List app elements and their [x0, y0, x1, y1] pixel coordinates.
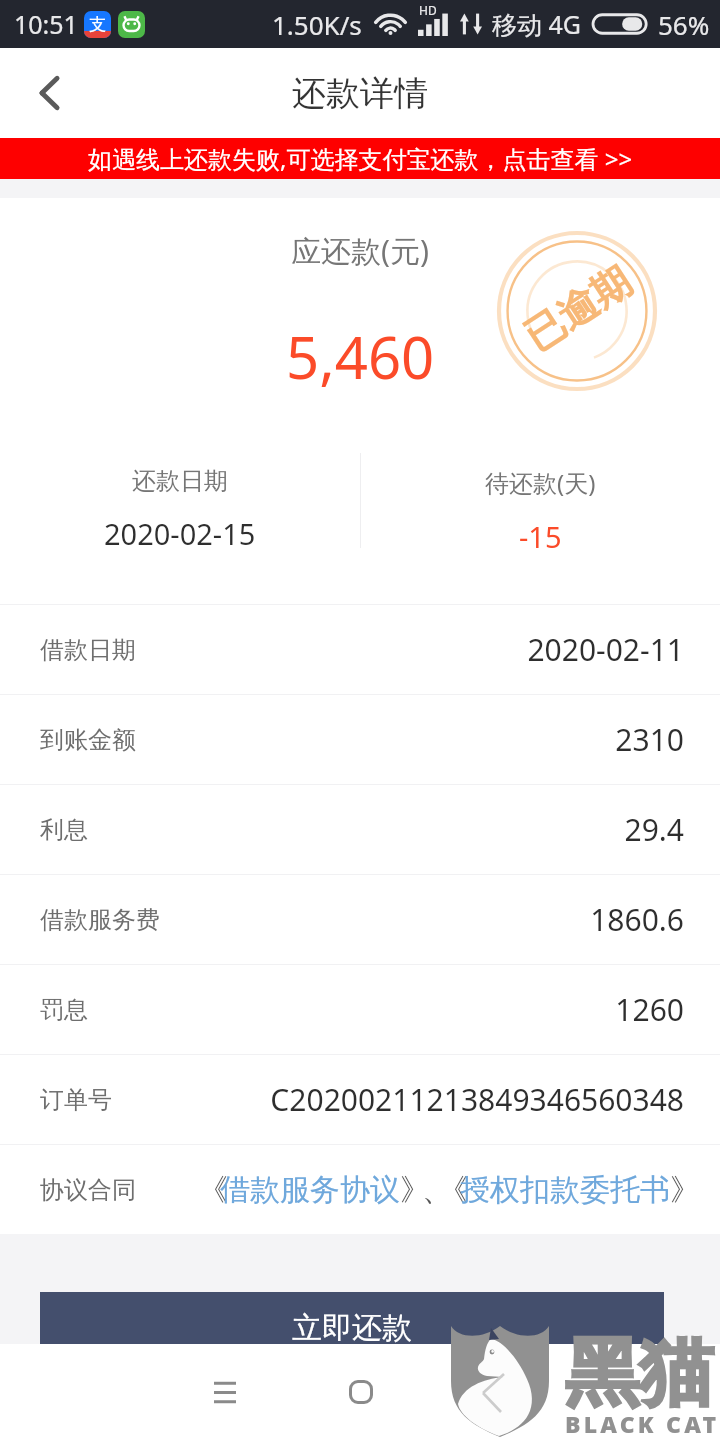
- staticText: BLACK CAT: [565, 1408, 720, 1439]
- staticText: 10:51: [14, 7, 78, 41]
- staticText: 56%: [658, 7, 710, 42]
- button[interactable]: 如遇线上还款失败,可选择支付宝还款，点击查看 >>: [0, 138, 720, 179]
- staticText: 借款日期: [40, 635, 136, 665]
- staticText: 2020-02-15: [104, 514, 256, 553]
- staticText: 支: [89, 14, 106, 35]
- button[interactable]: 借款服务费: [0, 875, 720, 964]
- button[interactable]: Back: [0, 48, 96, 138]
- staticText: 1860.6: [590, 899, 684, 940]
- button[interactable]: Recent apps: [191, 1358, 259, 1426]
- button[interactable]: 利息: [0, 785, 720, 874]
- staticText: 到账金额: [40, 725, 136, 755]
- staticText: 待还款(天): [485, 466, 596, 499]
- staticText: HD: [419, 2, 437, 18]
- staticText: 2020-02-11: [527, 629, 684, 670]
- staticText: 2310: [615, 719, 684, 760]
- staticText: 已逾期: [515, 256, 640, 361]
- staticText: 订单号: [40, 1085, 112, 1115]
- staticText: 黑猫: [565, 1327, 713, 1420]
- staticText: 《借款服务协议》、《授权扣款委托书》: [202, 1171, 696, 1209]
- staticText: 移动 4G: [492, 7, 582, 41]
- staticText: 应还款(元): [291, 230, 429, 271]
- button[interactable]: Home: [327, 1358, 395, 1426]
- button[interactable]: 订单号: [0, 1055, 720, 1144]
- staticText: 29.4: [624, 809, 684, 850]
- staticText: 罚息: [40, 995, 88, 1025]
- button[interactable]: 罚息: [0, 965, 720, 1054]
- staticText: 还款日期: [132, 466, 228, 496]
- staticText: 还款详情: [292, 72, 428, 115]
- staticText: 立即还款: [292, 1309, 412, 1344]
- button[interactable]: 到账金额: [0, 695, 720, 784]
- staticText: 借款服务费: [40, 905, 160, 935]
- staticText: 5,460: [286, 317, 435, 396]
- button[interactable]: 协议合同: [0, 1145, 720, 1234]
- staticText: 如遇线上还款失败,可选择支付宝还款，点击查看 >>: [88, 142, 633, 175]
- staticText: 1260: [615, 989, 684, 1030]
- button[interactable]: 立即还款: [40, 1292, 664, 1344]
- staticText: 利息: [40, 815, 88, 845]
- button[interactable]: 借款日期: [0, 605, 720, 694]
- staticText: 1.50K/s: [272, 7, 362, 42]
- staticText: 协议合同: [40, 1175, 136, 1205]
- staticText: C20200211213849346560348: [270, 1079, 684, 1120]
- staticText: -15: [519, 517, 562, 556]
